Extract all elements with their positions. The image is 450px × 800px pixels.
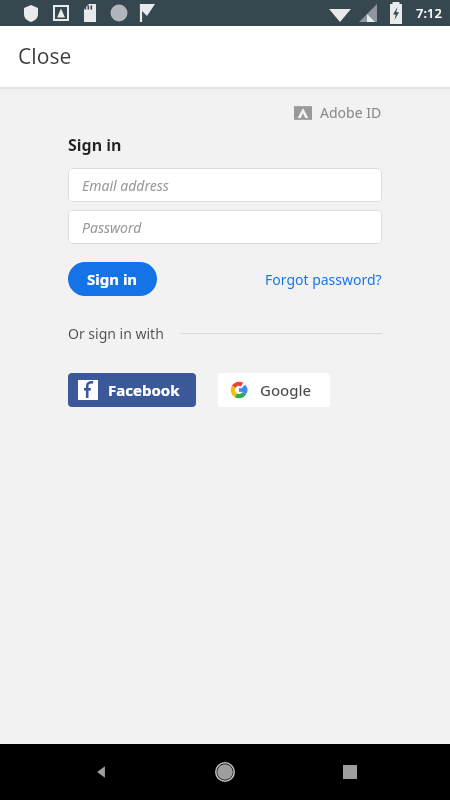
staticText: Password bbox=[82, 218, 142, 237]
staticText: Forgot password? bbox=[265, 270, 382, 289]
button[interactable]: Facebook bbox=[68, 373, 196, 407]
staticText: Google bbox=[260, 380, 312, 400]
staticText: Sign in bbox=[87, 269, 138, 289]
staticText: Or sign in with bbox=[68, 324, 164, 343]
staticText: Email address bbox=[82, 176, 169, 195]
staticText: Close bbox=[18, 42, 72, 71]
button[interactable]: Sign in bbox=[68, 262, 157, 296]
staticText: Facebook bbox=[108, 380, 180, 400]
button[interactable]: Home bbox=[201, 748, 249, 796]
button[interactable]: Back bbox=[77, 748, 125, 796]
staticText: Adobe ID bbox=[320, 103, 382, 122]
button[interactable]: Password bbox=[68, 210, 382, 244]
staticText: Sign in bbox=[68, 134, 122, 156]
button[interactable]: Email address bbox=[68, 168, 382, 202]
staticText: 7:12 bbox=[416, 4, 442, 22]
button[interactable]: Forgot password? bbox=[265, 270, 382, 289]
button[interactable]: Recent apps bbox=[326, 748, 374, 796]
button[interactable]: Google bbox=[218, 373, 330, 407]
button[interactable]: Close bbox=[0, 26, 450, 87]
